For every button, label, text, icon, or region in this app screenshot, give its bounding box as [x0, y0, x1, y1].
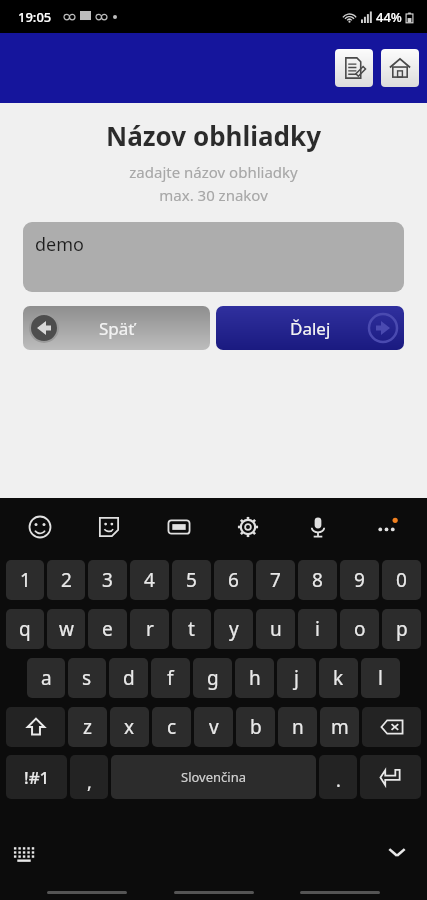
- staticText: 6: [228, 567, 239, 593]
- staticText: h: [249, 665, 261, 691]
- button[interactable]: l: [361, 658, 400, 698]
- staticText: d: [123, 665, 135, 691]
- staticText: t: [188, 616, 195, 642]
- staticText: n: [292, 714, 304, 740]
- staticText: 5: [186, 567, 197, 593]
- button[interactable]: x: [110, 707, 149, 747]
- staticText: 19:05: [18, 8, 52, 26]
- staticText: v: [209, 714, 219, 740]
- button[interactable]: Emoji: [22, 509, 58, 545]
- button[interactable]: 9: [340, 560, 379, 600]
- button[interactable]: w: [47, 609, 85, 649]
- button[interactable]: Backspace: [362, 707, 421, 747]
- button[interactable]: Späť: [23, 306, 210, 350]
- staticText: 8: [312, 567, 323, 593]
- staticText: a: [41, 665, 52, 691]
- staticText: p: [396, 616, 408, 642]
- button[interactable]: s: [68, 658, 106, 698]
- staticText: 0: [396, 567, 407, 593]
- button[interactable]: 8: [298, 560, 337, 600]
- button[interactable]: e: [88, 609, 127, 649]
- staticText: b: [250, 714, 262, 740]
- button[interactable]: i: [298, 609, 337, 649]
- staticText: 2: [61, 567, 72, 593]
- button[interactable]: GIF: [161, 509, 197, 545]
- button[interactable]: Voice input: [300, 509, 336, 545]
- staticText: 7: [270, 567, 281, 593]
- button[interactable]: t: [172, 609, 211, 649]
- staticText: .: [336, 768, 341, 793]
- staticText: Názov obhliadky: [0, 118, 427, 153]
- staticText: !#1: [24, 766, 50, 789]
- staticText: s: [82, 665, 92, 691]
- button[interactable]: 6: [214, 560, 253, 600]
- button[interactable]: j: [277, 658, 316, 698]
- staticText: g: [207, 665, 219, 691]
- button[interactable]: Edit report: [335, 49, 373, 87]
- button[interactable]: Shift: [6, 707, 65, 747]
- button[interactable]: demo: [23, 222, 404, 292]
- button[interactable]: c: [152, 707, 191, 747]
- button[interactable]: Ďalej: [216, 306, 404, 350]
- staticText: Slovenčina: [181, 768, 246, 786]
- staticText: o: [354, 616, 366, 642]
- staticText: e: [102, 616, 113, 642]
- button[interactable]: m: [320, 707, 359, 747]
- button[interactable]: More options: [369, 509, 405, 545]
- staticText: ,: [87, 770, 92, 795]
- button[interactable]: g: [193, 658, 232, 698]
- button[interactable]: Stickers: [91, 509, 127, 545]
- button[interactable]: p: [382, 609, 421, 649]
- staticText: 44%: [376, 8, 402, 26]
- button[interactable]: y: [214, 609, 253, 649]
- staticText: zadajte názov obhliadky: [0, 162, 427, 182]
- staticText: r: [146, 616, 154, 642]
- button[interactable]: v: [194, 707, 233, 747]
- staticText: 9: [354, 567, 365, 593]
- button[interactable]: Space: [111, 755, 316, 799]
- button[interactable]: d: [109, 658, 148, 698]
- button[interactable]: .: [319, 755, 357, 799]
- staticText: Späť: [99, 317, 135, 340]
- button[interactable]: a: [27, 658, 65, 698]
- button[interactable]: 2: [47, 560, 85, 600]
- staticText: j: [294, 665, 299, 691]
- staticText: z: [83, 714, 92, 740]
- staticText: w: [59, 616, 74, 642]
- staticText: k: [333, 665, 344, 691]
- button[interactable]: 1: [6, 560, 44, 600]
- button[interactable]: !#1: [6, 755, 67, 799]
- button[interactable]: q: [6, 609, 44, 649]
- staticText: y: [229, 616, 239, 642]
- staticText: x: [124, 714, 135, 740]
- staticText: 1: [20, 567, 31, 593]
- button[interactable]: h: [235, 658, 274, 698]
- button[interactable]: 5: [172, 560, 211, 600]
- staticText: m: [331, 714, 349, 740]
- button[interactable]: 0: [382, 560, 421, 600]
- button[interactable]: Keyboard settings: [230, 509, 266, 545]
- button[interactable]: k: [319, 658, 358, 698]
- staticText: 3: [102, 567, 113, 593]
- button[interactable]: ,: [70, 755, 108, 799]
- staticText: demo: [35, 232, 84, 257]
- staticText: Ďalej: [290, 317, 331, 340]
- staticText: i: [315, 616, 320, 642]
- button[interactable]: o: [340, 609, 379, 649]
- button[interactable]: z: [68, 707, 107, 747]
- button[interactable]: Enter: [360, 755, 421, 799]
- staticText: max. 30 znakov: [0, 185, 427, 205]
- button[interactable]: u: [256, 609, 295, 649]
- button[interactable]: f: [151, 658, 190, 698]
- button[interactable]: 3: [88, 560, 127, 600]
- button[interactable]: 7: [256, 560, 295, 600]
- staticText: f: [167, 665, 174, 691]
- staticText: c: [167, 714, 177, 740]
- button[interactable]: r: [130, 609, 169, 649]
- button[interactable]: 4: [130, 560, 169, 600]
- staticText: l: [378, 665, 383, 691]
- button[interactable]: n: [278, 707, 317, 747]
- staticText: q: [19, 616, 31, 642]
- button[interactable]: Home: [381, 49, 419, 87]
- button[interactable]: b: [236, 707, 275, 747]
